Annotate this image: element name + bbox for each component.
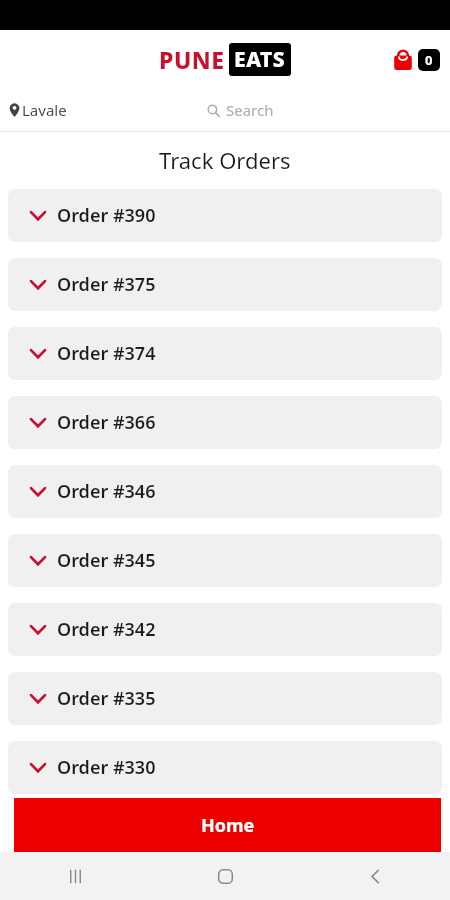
button[interactable]: Order #335 — [8, 672, 442, 725]
button[interactable]: Back — [300, 852, 450, 900]
button[interactable]: Order #366 — [8, 396, 442, 449]
staticText: Order #335 — [57, 686, 156, 711]
button[interactable]: Home — [150, 852, 300, 900]
staticText: Order #375 — [57, 272, 156, 297]
staticText: Order #390 — [57, 203, 156, 228]
button[interactable]: Recent apps — [0, 852, 150, 900]
staticText: Order #342 — [57, 617, 156, 642]
staticText: Lavale — [22, 100, 67, 120]
button[interactable]: Search — [207, 100, 274, 120]
staticText: PUNE — [159, 44, 225, 75]
staticText: EATS — [234, 45, 286, 74]
staticText: Track Orders — [159, 145, 291, 175]
button[interactable]: Order #375 — [8, 258, 442, 311]
button[interactable]: Order #345 — [8, 534, 442, 587]
staticText: Order #330 — [57, 755, 156, 780]
staticText: Order #374 — [57, 341, 156, 366]
button[interactable]: Order #346 — [8, 465, 442, 518]
button[interactable]: Order #330 — [8, 741, 442, 794]
button[interactable]: Order #390 — [8, 189, 442, 242]
button[interactable]: Order #374 — [8, 327, 442, 380]
button[interactable]: PUNE — [159, 43, 291, 76]
staticText: Search — [226, 100, 274, 120]
button[interactable]: Order #342 — [8, 603, 442, 656]
button[interactable]: Cart, 0 items — [393, 49, 440, 71]
button[interactable]: Lavale — [9, 100, 67, 120]
button[interactable]: Home — [14, 798, 441, 852]
staticText: Order #366 — [57, 410, 156, 435]
staticText: Order #345 — [57, 548, 156, 573]
staticText: 0 — [425, 51, 433, 69]
staticText: Order #346 — [57, 479, 156, 504]
staticText: Home — [201, 813, 255, 838]
